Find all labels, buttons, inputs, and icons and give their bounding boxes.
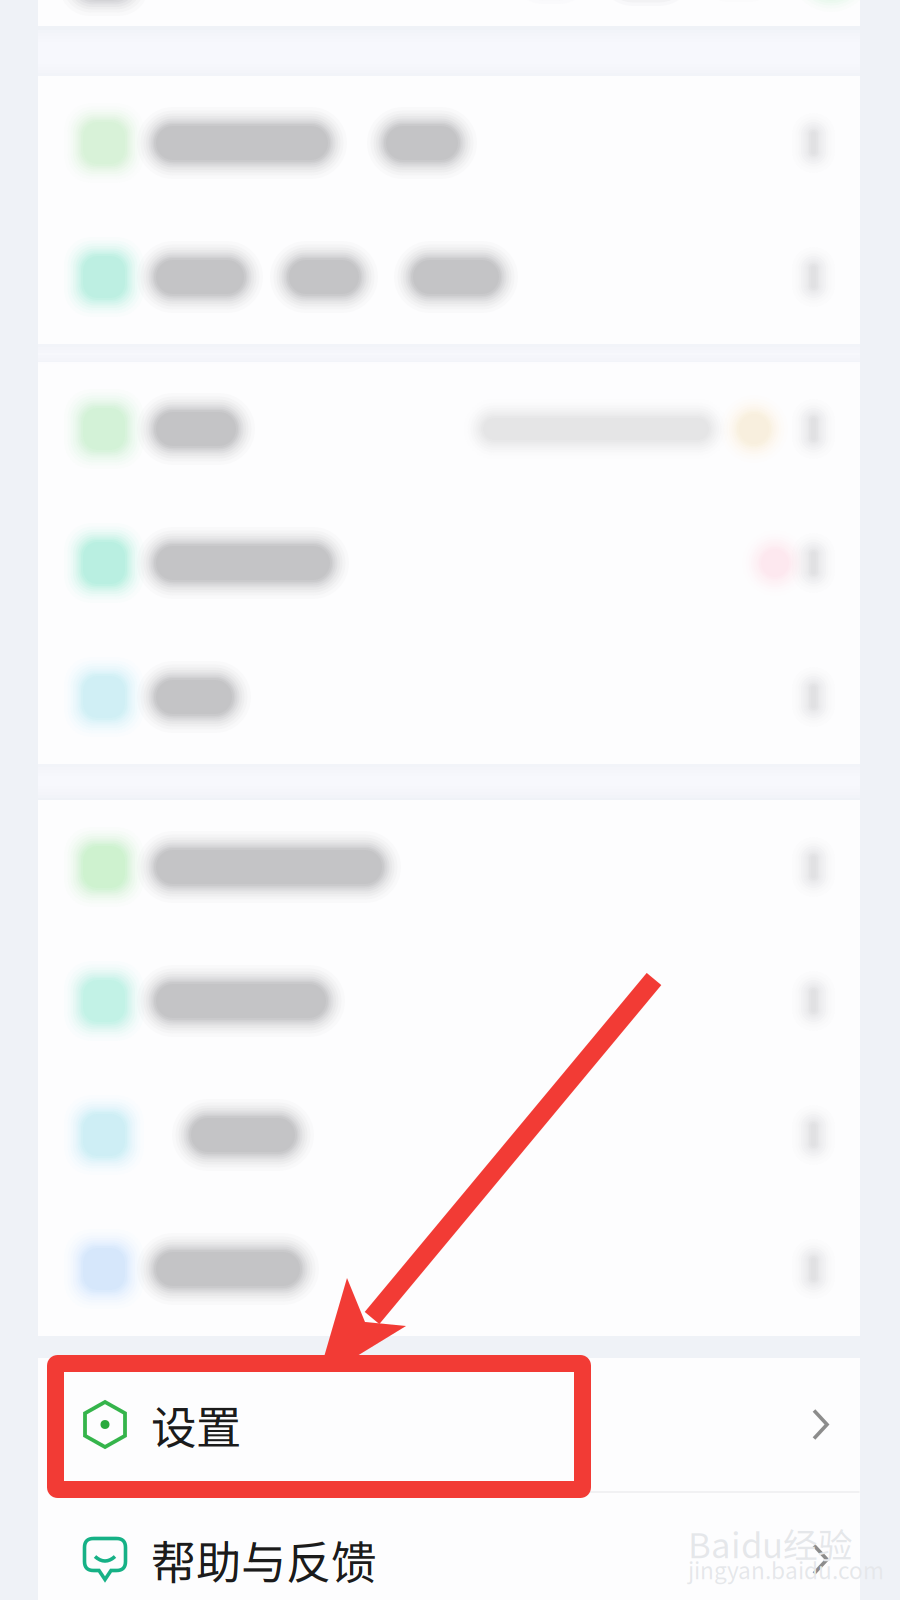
button[interactable]: 设置 — [38, 1358, 860, 1491]
staticText: jingyan.baidu.com — [688, 1553, 884, 1586]
button[interactable]: 帮助与反馈 — [38, 1493, 860, 1600]
staticText: 设置 — [151, 1392, 241, 1457]
staticText: Baidu经验 — [688, 1518, 853, 1568]
staticText: 帮助与反馈 — [151, 1527, 376, 1592]
